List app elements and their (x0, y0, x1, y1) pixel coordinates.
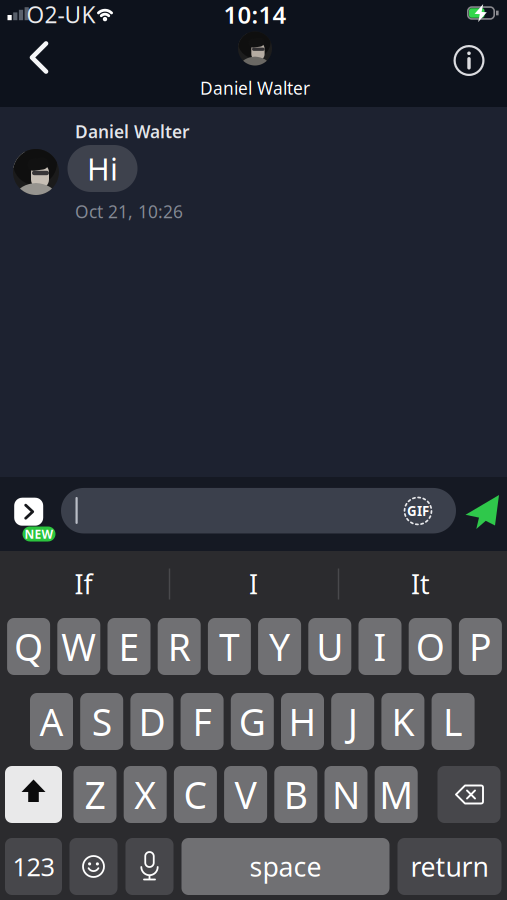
button[interactable]: C (174, 766, 217, 823)
button[interactable]: N (324, 766, 367, 823)
staticText: N (332, 770, 360, 819)
button[interactable]: It (340, 560, 500, 608)
button[interactable]: If (3, 560, 163, 608)
staticText: H (288, 697, 316, 746)
button[interactable]: L (432, 693, 475, 750)
button[interactable] (125, 838, 173, 895)
staticText: V (235, 770, 257, 819)
button[interactable]: D (130, 693, 173, 750)
staticText: P (469, 622, 492, 671)
button[interactable]: Y (258, 618, 301, 675)
staticText: F (193, 697, 212, 746)
button[interactable]: V (224, 766, 267, 823)
staticText: It (411, 566, 430, 602)
staticText: NEW (24, 526, 53, 542)
button[interactable]: S (80, 693, 123, 750)
button[interactable]: F (181, 693, 224, 750)
button[interactable] (25, 40, 53, 74)
button[interactable]: return (397, 838, 501, 895)
staticText: I (373, 622, 386, 671)
button[interactable]: space (181, 838, 389, 895)
staticText: E (118, 622, 139, 671)
staticText: B (284, 770, 308, 819)
button[interactable] (5, 766, 62, 823)
button[interactable] (464, 487, 500, 535)
staticText: Daniel Walter (200, 76, 310, 99)
staticText: space (249, 849, 321, 884)
button[interactable] (14, 498, 43, 526)
button[interactable]: GIF (404, 497, 432, 525)
staticText: J (348, 697, 358, 746)
button[interactable]: T (208, 618, 251, 675)
button[interactable]: 123 (5, 838, 62, 895)
button[interactable]: Q (7, 618, 50, 675)
staticText: Hi (87, 148, 118, 189)
button[interactable]: W (57, 618, 100, 675)
staticText: A (39, 697, 63, 746)
staticText: 10:14 (223, 0, 286, 30)
staticText: return (410, 849, 488, 884)
staticText: U (316, 622, 343, 671)
staticText: I (249, 566, 258, 602)
staticText: S (92, 697, 112, 746)
staticText: W (61, 622, 96, 671)
staticText: Y (269, 622, 290, 671)
button[interactable]: Z (73, 766, 116, 823)
button[interactable] (453, 45, 484, 76)
staticText: Q (14, 622, 43, 671)
button[interactable]: X (124, 766, 167, 823)
button[interactable]: I (358, 618, 401, 675)
button[interactable]: Daniel Walter (200, 31, 310, 99)
staticText: T (219, 622, 240, 671)
staticText: O2-UK (26, 0, 95, 29)
staticText: If (74, 566, 92, 602)
staticText: Oct 21, 10:26 (75, 200, 183, 223)
button[interactable]: A (30, 693, 73, 750)
staticText: R (168, 622, 191, 671)
button[interactable] (437, 766, 500, 823)
staticText: C (183, 770, 207, 819)
staticText: K (391, 697, 414, 746)
button[interactable]: M (375, 766, 418, 823)
button[interactable]: R (158, 618, 201, 675)
button[interactable]: U (308, 618, 351, 675)
staticText: X (134, 770, 156, 819)
staticText: GIF (407, 502, 429, 520)
staticText: M (379, 770, 413, 819)
staticText: Daniel Walter (75, 120, 190, 143)
staticText: 123 (12, 850, 54, 883)
button[interactable]: B (274, 766, 317, 823)
staticText: L (443, 697, 463, 746)
button[interactable]: K (381, 693, 424, 750)
staticText: D (138, 697, 165, 746)
staticText: G (239, 697, 266, 746)
button[interactable]: E (107, 618, 150, 675)
button[interactable]: P (459, 618, 502, 675)
button[interactable] (69, 838, 117, 895)
button[interactable]: G (231, 693, 274, 750)
button[interactable]: I (173, 560, 333, 608)
button[interactable]: H (281, 693, 324, 750)
staticText: Z (84, 770, 105, 819)
button[interactable]: O (409, 618, 452, 675)
staticText: O (416, 622, 445, 671)
button[interactable]: J (331, 693, 374, 750)
